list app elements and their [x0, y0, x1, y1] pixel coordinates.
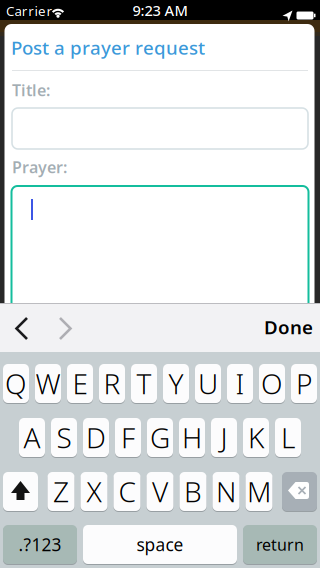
button[interactable]: U [195, 363, 221, 403]
button[interactable] [53, 314, 77, 342]
button[interactable]: G [147, 417, 173, 457]
button[interactable]: X [80, 471, 107, 511]
button[interactable]: N [212, 471, 239, 511]
button[interactable]: return [243, 524, 317, 564]
staticText: T [136, 365, 151, 402]
button[interactable]: I [227, 363, 253, 403]
staticText: D [86, 419, 106, 456]
button[interactable]: O [259, 363, 285, 403]
staticText: G [150, 419, 170, 456]
button[interactable]: C [113, 471, 140, 511]
button[interactable]: M [245, 471, 272, 511]
button[interactable]: Done [264, 314, 313, 339]
staticText: Carrier [6, 2, 52, 20]
button[interactable]: W [35, 363, 61, 403]
button[interactable]: V [146, 471, 173, 511]
button[interactable]: F [115, 417, 141, 457]
button[interactable] [3, 471, 38, 511]
button[interactable] [11, 186, 308, 310]
staticText: Post a prayer request [11, 35, 205, 60]
button[interactable]: D [83, 417, 109, 457]
button[interactable]: H [179, 417, 205, 457]
staticText: O [261, 365, 283, 402]
staticText: J [220, 419, 227, 456]
button[interactable]: T [131, 363, 157, 403]
staticText: Y [168, 365, 183, 402]
button[interactable]: S [51, 417, 77, 457]
button[interactable]: K [243, 417, 269, 457]
staticText: Z [53, 473, 69, 510]
staticText: F [121, 419, 135, 456]
staticText: space [136, 533, 183, 556]
staticText: C [118, 473, 135, 510]
button[interactable]: Z [47, 471, 74, 511]
button[interactable]: space [83, 524, 237, 564]
staticText: .?123 [18, 533, 61, 556]
button[interactable] [12, 108, 308, 149]
button[interactable]: P [291, 363, 317, 403]
button[interactable]: A [19, 417, 45, 457]
staticText: Title: [12, 79, 50, 101]
staticText: W [35, 365, 60, 402]
button[interactable]: .?123 [3, 524, 77, 564]
staticText: M [247, 473, 271, 510]
button[interactable]: J [211, 417, 237, 457]
staticText: A [23, 419, 40, 456]
staticText: V [152, 473, 168, 510]
staticText: N [216, 473, 236, 510]
staticText: Prayer: [12, 156, 67, 178]
staticText: K [248, 419, 264, 456]
staticText: return [256, 534, 304, 555]
button[interactable]: Y [163, 363, 189, 403]
staticText: R [103, 365, 120, 402]
button[interactable]: E [67, 363, 93, 403]
staticText: Q [5, 365, 27, 402]
staticText: S [56, 419, 71, 456]
button[interactable] [282, 471, 317, 511]
staticText: 9:23 AM [132, 0, 187, 20]
staticText: X [86, 473, 101, 510]
button[interactable]: R [99, 363, 125, 403]
staticText: Done [264, 314, 313, 339]
staticText: L [281, 419, 295, 456]
staticText: E [72, 365, 87, 402]
staticText: I [235, 365, 244, 402]
staticText: U [198, 365, 218, 402]
button[interactable]: Q [3, 363, 29, 403]
staticText: B [184, 473, 202, 510]
button[interactable]: L [275, 417, 301, 457]
staticText: P [296, 365, 312, 402]
button[interactable] [10, 314, 34, 342]
button[interactable]: B [179, 471, 206, 511]
staticText: H [182, 419, 202, 456]
